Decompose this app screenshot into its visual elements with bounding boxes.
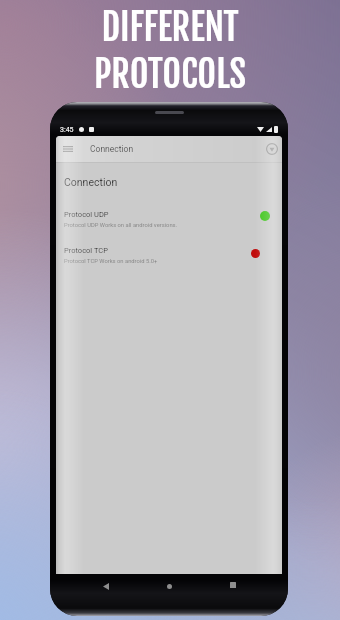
button[interactable]: Help bbox=[263, 140, 281, 158]
staticText: Protocol TCP Works on android 5.0+ bbox=[64, 258, 158, 265]
button[interactable]: Protocol TCP bbox=[56, 246, 282, 265]
staticText: Connection bbox=[90, 144, 134, 154]
staticText: 3:45 bbox=[60, 126, 74, 134]
staticText: Protocol UDP bbox=[64, 210, 109, 219]
staticText: Protocol UDP Works on all android versio… bbox=[64, 222, 178, 229]
button[interactable]: Recent apps bbox=[225, 577, 241, 593]
button[interactable]: Back bbox=[98, 578, 114, 594]
staticText: Connection bbox=[64, 176, 118, 188]
button[interactable]: Protocol UDP bbox=[56, 210, 282, 229]
staticText: PROTOCOLS bbox=[94, 52, 246, 97]
button[interactable]: Home bbox=[161, 578, 177, 594]
staticText: Protocol TCP bbox=[64, 246, 108, 255]
button[interactable]: Open navigation menu bbox=[60, 141, 76, 157]
staticText: DIFFERENT bbox=[101, 5, 239, 50]
